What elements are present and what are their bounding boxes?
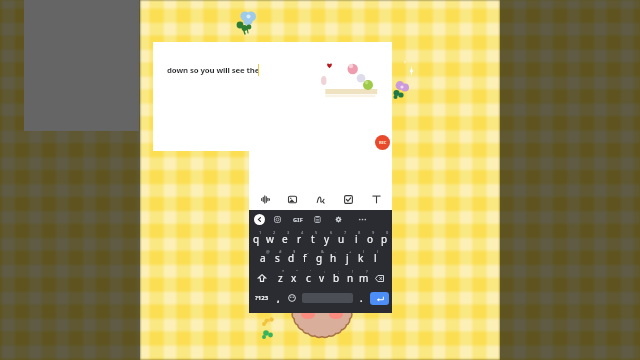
staticText: v: [319, 271, 325, 285]
staticText: 9: [372, 230, 375, 235]
button[interactable]: Image: [281, 188, 303, 210]
button[interactable]: Recording: [375, 135, 390, 150]
staticText: -: [335, 249, 337, 254]
button[interactable]: Text: [365, 188, 387, 210]
staticText: 7: [344, 230, 347, 235]
staticText: :: [324, 269, 326, 274]
staticText: j: [346, 251, 349, 265]
button[interactable]: a: [256, 249, 270, 267]
button[interactable]: Backspace: [372, 269, 386, 287]
staticText: 4: [301, 230, 304, 235]
staticText: +: [349, 249, 352, 254]
staticText: r: [297, 232, 302, 246]
staticText: _: [307, 249, 309, 254]
button[interactable]: Clipboard: [312, 214, 323, 225]
button[interactable]: ?123: [253, 289, 271, 307]
button[interactable]: o: [363, 230, 377, 248]
staticText: .: [360, 292, 363, 304]
staticText: a: [260, 251, 266, 265]
staticText: 1: [259, 230, 262, 235]
staticText: g: [316, 251, 323, 265]
staticText: q: [253, 232, 260, 246]
staticText: k: [358, 251, 364, 265]
button[interactable]: i: [349, 230, 363, 248]
staticText: i: [355, 232, 358, 246]
button[interactable]: l: [368, 249, 382, 267]
staticText: ;: [338, 269, 340, 274]
button[interactable]: t: [306, 230, 320, 248]
button[interactable]: c: [301, 269, 315, 287]
button[interactable]: g: [312, 249, 326, 267]
button[interactable]: Audio: [254, 188, 276, 210]
staticText: ?123: [255, 294, 269, 302]
staticText: p: [381, 232, 388, 246]
button[interactable]: d: [284, 249, 298, 267]
button[interactable]: e: [278, 230, 292, 248]
button[interactable]: p: [377, 230, 391, 248]
button[interactable]: x: [287, 269, 301, 287]
button[interactable]: b: [329, 269, 343, 287]
staticText: s: [275, 251, 280, 265]
button[interactable]: m: [357, 269, 371, 287]
staticText: GIF: [293, 216, 303, 224]
staticText: t: [311, 232, 315, 246]
button[interactable]: Enter: [370, 292, 389, 305]
staticText: h: [330, 251, 337, 265]
staticText: c: [306, 271, 311, 285]
staticText: d: [288, 251, 295, 265]
staticText: ): [377, 249, 379, 254]
button[interactable]: r: [292, 230, 306, 248]
button[interactable]: Shift: [255, 269, 269, 287]
button[interactable]: s: [270, 249, 284, 267]
staticText: ': [310, 269, 311, 274]
staticText: REC: [379, 140, 387, 145]
staticText: 3: [287, 230, 290, 235]
button[interactable]: n: [343, 269, 357, 287]
button[interactable]: Stickers: [272, 214, 283, 225]
button[interactable]: .: [356, 289, 366, 307]
staticText: $: [293, 249, 296, 254]
staticText: ": [296, 269, 298, 274]
button[interactable]: u: [334, 230, 348, 248]
button[interactable]: z: [273, 269, 287, 287]
staticText: down so you will see the: [167, 65, 260, 76]
staticText: @: [266, 249, 270, 254]
staticText: 5: [315, 230, 318, 235]
staticText: b: [333, 271, 340, 285]
staticText: ,: [277, 292, 280, 304]
staticText: o: [367, 232, 374, 246]
button[interactable]: f: [298, 249, 312, 267]
button[interactable]: w: [263, 230, 277, 248]
button[interactable]: Settings: [333, 214, 344, 225]
button[interactable]: k: [354, 249, 368, 267]
button[interactable]: j: [340, 249, 354, 267]
staticText: u: [338, 232, 345, 246]
button[interactable]: q: [249, 230, 263, 248]
staticText: !: [352, 269, 354, 274]
staticText: &: [321, 249, 324, 254]
staticText: 8: [358, 230, 361, 235]
button[interactable]: ,: [272, 289, 284, 307]
staticText: x: [291, 271, 297, 285]
button[interactable]: Draw: [309, 188, 331, 210]
staticText: w: [266, 232, 274, 246]
staticText: f: [303, 251, 307, 265]
button[interactable]: v: [315, 269, 329, 287]
staticText: n: [347, 271, 354, 285]
staticText: m: [359, 271, 369, 285]
staticText: 2: [273, 230, 276, 235]
staticText: #: [279, 249, 282, 254]
button[interactable]: h: [326, 249, 340, 267]
button[interactable]: Back: [254, 214, 265, 225]
button[interactable]: More options: [356, 215, 368, 224]
button[interactable]: Checklist: [337, 188, 359, 210]
button[interactable]: y: [320, 230, 334, 248]
staticText: z: [278, 271, 283, 285]
staticText: l: [374, 251, 377, 265]
staticText: (: [363, 249, 365, 254]
staticText: 0: [386, 230, 389, 235]
button[interactable]: GIF: [291, 214, 305, 225]
button[interactable]: Emoji: [286, 289, 298, 307]
staticText: ?: [366, 269, 368, 274]
